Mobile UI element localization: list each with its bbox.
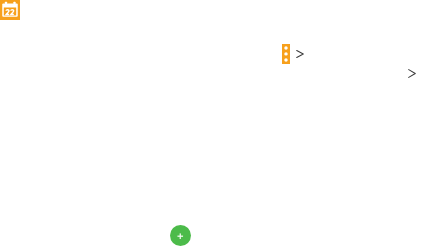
button[interactable]: More options	[0, 44, 421, 64]
button[interactable]: Open details	[408, 69, 416, 78]
button[interactable]: Add event	[170, 225, 191, 246]
button[interactable]: Open details	[0, 69, 421, 78]
button[interactable]: More options	[282, 44, 290, 64]
button[interactable]: Calendar	[0, 0, 20, 20]
button[interactable]: Open entry	[296, 50, 304, 58]
